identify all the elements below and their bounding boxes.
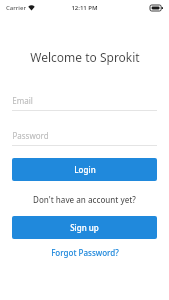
button[interactable]: Login xyxy=(12,158,157,181)
staticText: Login xyxy=(74,164,96,175)
button[interactable]: Sign up xyxy=(12,216,157,239)
staticText: 12:11 PM xyxy=(71,4,98,12)
staticText: Password xyxy=(12,130,49,141)
staticText: Forgot Password? xyxy=(51,247,119,258)
button[interactable]: Forgot Password? xyxy=(43,245,127,260)
staticText: Sign up xyxy=(70,222,99,233)
button[interactable]: Email xyxy=(12,93,157,111)
button[interactable]: Password xyxy=(12,128,157,146)
staticText: Carrier xyxy=(6,4,26,12)
staticText: Welcome to Sprokit xyxy=(30,49,140,65)
staticText: Don't have an account yet? xyxy=(33,194,136,205)
staticText: Email xyxy=(12,95,33,106)
